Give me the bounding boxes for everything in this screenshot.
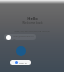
- staticText: Welcome back: [22, 21, 43, 25]
- staticText: user@example.com: [13, 34, 36, 40]
- button[interactable]: user@example.com: [4, 34, 36, 40]
- button[interactable]: Sign in: [10, 60, 31, 65]
- button[interactable]: Continue: [16, 46, 26, 56]
- staticText: SIGN IN TO CONTINUE USING: [14, 29, 50, 32]
- staticText: Hello: [27, 16, 38, 21]
- staticText: Sign in: [19, 61, 27, 64]
